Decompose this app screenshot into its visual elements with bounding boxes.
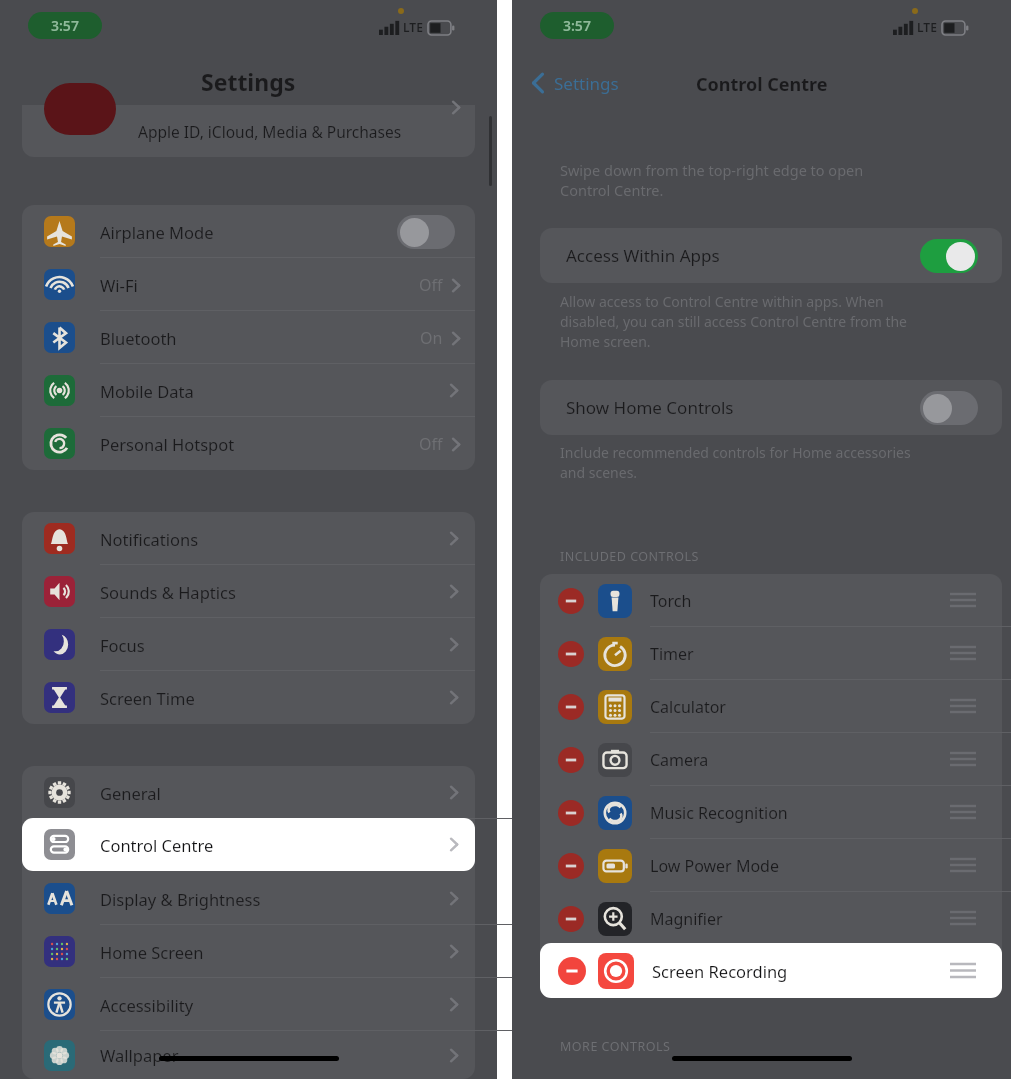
- staticText: Accessibility: [100, 994, 194, 1016]
- staticText: Settings: [201, 66, 296, 97]
- button[interactable]: Control Centre: [22, 818, 475, 871]
- button[interactable]: Access Within Apps: [540, 228, 1002, 283]
- other: Reorder Camera: [950, 752, 976, 767]
- staticText: Mobile Data: [100, 380, 194, 402]
- button[interactable]: Accessibility: [22, 978, 475, 1031]
- button[interactable]: Wi-Fi: [22, 258, 475, 311]
- staticText: Control Centre: [100, 834, 214, 856]
- other: Remove Camera: [558, 747, 584, 773]
- button[interactable]: Off: [920, 391, 978, 425]
- button[interactable]: Personal Hotspot: [22, 417, 475, 470]
- staticText: Personal Hotspot: [100, 433, 235, 455]
- staticText: Settings: [554, 72, 619, 95]
- staticText: Calculator: [650, 696, 726, 718]
- staticText: Magnifier: [650, 908, 723, 930]
- staticText: Focus: [100, 634, 145, 656]
- staticText: Notifications: [100, 528, 199, 550]
- button[interactable]: Remove Camera: [540, 733, 1002, 786]
- button[interactable]: Notifications: [22, 512, 475, 565]
- button[interactable]: Remove Low Power Mode: [540, 839, 1002, 892]
- button[interactable]: On: [920, 239, 978, 273]
- staticText: Music Recognition: [650, 802, 788, 824]
- staticText: Low Power Mode: [650, 855, 779, 877]
- staticText: Show Home Controls: [566, 396, 734, 419]
- staticText: Timer: [650, 643, 694, 665]
- staticText: Control Centre: [696, 72, 828, 97]
- button[interactable]: Remove Timer: [540, 627, 1002, 680]
- button[interactable]: General: [22, 766, 475, 819]
- staticText: Bluetooth: [100, 327, 177, 349]
- staticText: Include recommended controls for Home ac…: [560, 443, 911, 482]
- staticText: Screen Recording: [652, 960, 788, 982]
- staticText: MORE CONTROLS: [560, 1038, 671, 1055]
- staticText: Camera: [650, 749, 709, 771]
- other: Remove Music Recognition: [558, 800, 584, 826]
- button[interactable]: Wallpaper: [22, 1031, 475, 1079]
- other: Reorder Magnifier: [950, 911, 976, 926]
- staticText: LTE: [917, 19, 937, 35]
- button[interactable]: Sounds & Haptics: [22, 565, 475, 618]
- staticText: Apple ID, iCloud, Media & Purchases: [138, 121, 402, 142]
- staticText: Swipe down from the top-right edge to op…: [560, 160, 864, 200]
- other: Reorder Calculator: [950, 699, 976, 714]
- staticText: Off: [419, 433, 443, 455]
- staticText: Display & Brightness: [100, 888, 261, 910]
- button[interactable]: Bluetooth: [22, 311, 475, 364]
- staticText: Wi-Fi: [100, 274, 138, 296]
- button[interactable]: Remove Calculator: [540, 680, 1002, 733]
- staticText: General: [100, 782, 161, 804]
- staticText: Home Screen: [100, 941, 204, 963]
- other: Reorder Torch: [950, 593, 976, 608]
- staticText: Sounds & Haptics: [100, 581, 236, 603]
- staticText: 3:57: [563, 16, 591, 35]
- other: Remove Low Power Mode: [558, 853, 584, 879]
- button[interactable]: Settings: [530, 70, 619, 96]
- button[interactable]: Display & Brightness: [22, 872, 475, 925]
- staticText: Airplane Mode: [100, 221, 214, 243]
- other: Reorder Music Recognition: [950, 805, 976, 820]
- button[interactable]: Focus: [22, 618, 475, 671]
- other: Remove Magnifier: [558, 906, 584, 932]
- staticText: 3:57: [51, 16, 79, 35]
- staticText: Torch: [650, 590, 692, 612]
- other: Remove Timer: [558, 641, 584, 667]
- staticText: On: [420, 327, 443, 349]
- button[interactable]: Airplane Mode: [22, 205, 475, 258]
- button[interactable]: Remove Magnifier: [540, 892, 1002, 945]
- staticText: Allow access to Control Centre within ap…: [560, 292, 908, 351]
- other: Reorder Low Power Mode: [950, 858, 976, 873]
- other: Remove Torch: [558, 588, 584, 614]
- staticText: Off: [419, 274, 443, 296]
- other: Remove Calculator: [558, 694, 584, 720]
- button[interactable]: Remove Music Recognition: [540, 786, 1002, 839]
- staticText: Wallpaper: [100, 1044, 179, 1066]
- staticText: Access Within Apps: [566, 244, 720, 267]
- staticText: LTE: [403, 19, 423, 35]
- other: Reorder Timer: [950, 646, 976, 661]
- staticText: INCLUDED CONTROLS: [560, 548, 699, 565]
- button[interactable]: Mobile Data: [22, 364, 475, 417]
- button[interactable]: Show Home Controls: [540, 380, 1002, 435]
- button[interactable]: Off: [397, 215, 455, 249]
- button[interactable]: Screen Time: [22, 671, 475, 724]
- staticText: Screen Time: [100, 687, 195, 709]
- button[interactable]: Screen Recording: [540, 943, 1002, 998]
- button[interactable]: Home Screen: [22, 925, 475, 978]
- button[interactable]: Remove Torch: [540, 574, 1002, 627]
- button[interactable]: Apple ID, iCloud, Media & Purchases: [22, 105, 475, 157]
